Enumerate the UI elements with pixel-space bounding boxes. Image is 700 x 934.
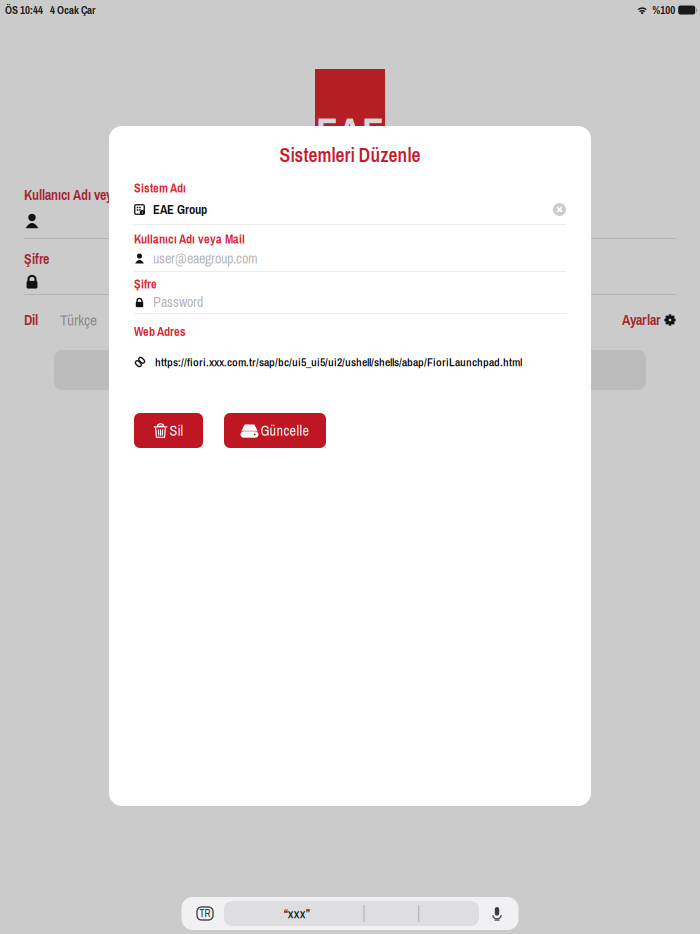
button[interactable]: Dictate <box>491 906 503 921</box>
staticText: Sistem Adı <box>134 180 186 196</box>
button[interactable]: Ayarlar <box>622 310 676 329</box>
staticText: Web Adres <box>134 323 186 340</box>
staticText: https://fiori.xxx.com.tr/sap/bc/ui5_ui5/… <box>155 354 522 370</box>
staticText: Şifre <box>24 250 49 268</box>
staticText: TR <box>199 907 210 920</box>
staticText: Şifre <box>134 276 157 292</box>
staticText: Kullanıcı Adı veya Mail <box>24 186 142 204</box>
staticText: 4 Ocak Çar <box>50 3 95 17</box>
staticText: Sil <box>169 421 183 440</box>
staticText: %100 <box>652 3 675 17</box>
button[interactable]: Clear system name <box>553 203 566 216</box>
staticText: “xxx” <box>284 904 310 922</box>
staticText: Türkçe <box>60 310 97 330</box>
staticText: Dil <box>24 310 38 329</box>
staticText: Ayarlar <box>622 310 661 329</box>
staticText: EAE <box>316 105 384 159</box>
staticText: EAE Group <box>153 201 207 218</box>
staticText: Password <box>153 293 203 311</box>
staticText: user@eaegroup.com <box>153 249 258 268</box>
staticText: Sistemleri Düzenle <box>279 142 420 168</box>
staticText: Güncelle <box>260 421 309 440</box>
button[interactable]: Sil <box>134 413 203 448</box>
staticText: Kullanıcı Adı veya Mail <box>134 231 245 247</box>
button[interactable]: TR <box>197 907 213 920</box>
staticText: ÖS 10:44 <box>5 3 43 17</box>
button[interactable]: Güncelle <box>224 413 326 448</box>
